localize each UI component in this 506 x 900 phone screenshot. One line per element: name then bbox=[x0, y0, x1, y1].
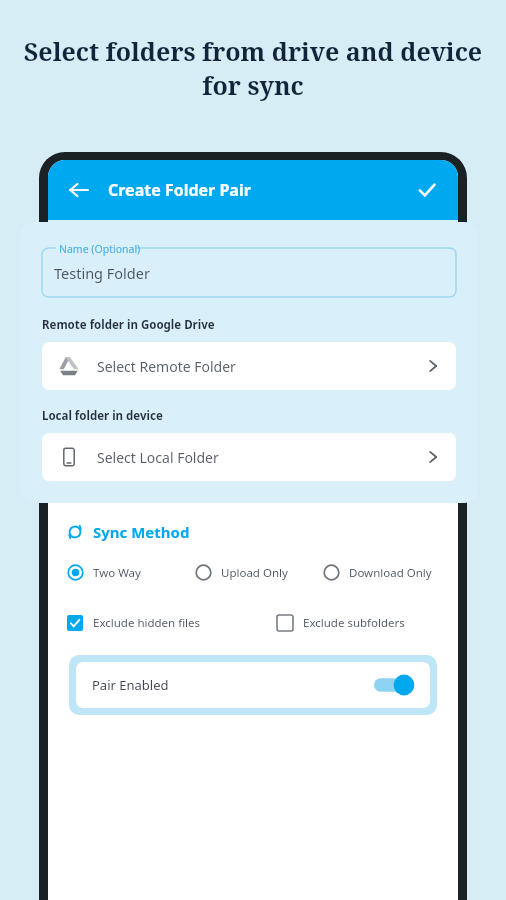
button[interactable]: Exclude hidden files bbox=[67, 613, 277, 633]
button[interactable]: Select Local Folder bbox=[42, 433, 456, 481]
staticText: Select Remote Folder bbox=[97, 357, 236, 376]
staticText: Upload Only bbox=[221, 565, 288, 581]
staticText: Exclude subfolders bbox=[303, 615, 405, 631]
button[interactable]: Pair Enabled toggle bbox=[374, 675, 414, 695]
button[interactable]: Download Only bbox=[323, 562, 446, 583]
staticText: Name (Optional) bbox=[59, 242, 141, 256]
button[interactable]: Exclude subfolders bbox=[277, 613, 446, 633]
staticText: Pair Enabled bbox=[92, 676, 169, 694]
staticText: Sync Method bbox=[93, 522, 190, 542]
button[interactable]: Back bbox=[62, 173, 96, 207]
button[interactable]: Select Remote Folder bbox=[42, 342, 456, 390]
staticText: Create Folder Pair bbox=[108, 179, 251, 201]
button[interactable]: Pair Enabled bbox=[76, 662, 430, 708]
staticText: Testing Folder bbox=[54, 263, 150, 283]
button[interactable]: Save bbox=[410, 173, 444, 207]
staticText: Select folders from drive and device for… bbox=[22, 34, 484, 102]
staticText: Local folder in device bbox=[42, 408, 163, 424]
staticText: Two Way bbox=[93, 565, 141, 581]
staticText: Select Local Folder bbox=[97, 448, 219, 467]
button[interactable]: Two Way bbox=[67, 562, 195, 583]
button[interactable]: Upload Only bbox=[195, 562, 323, 583]
staticText: Exclude hidden files bbox=[93, 615, 201, 631]
staticText: Remote folder in Google Drive bbox=[42, 317, 215, 333]
staticText: Download Only bbox=[349, 565, 432, 581]
